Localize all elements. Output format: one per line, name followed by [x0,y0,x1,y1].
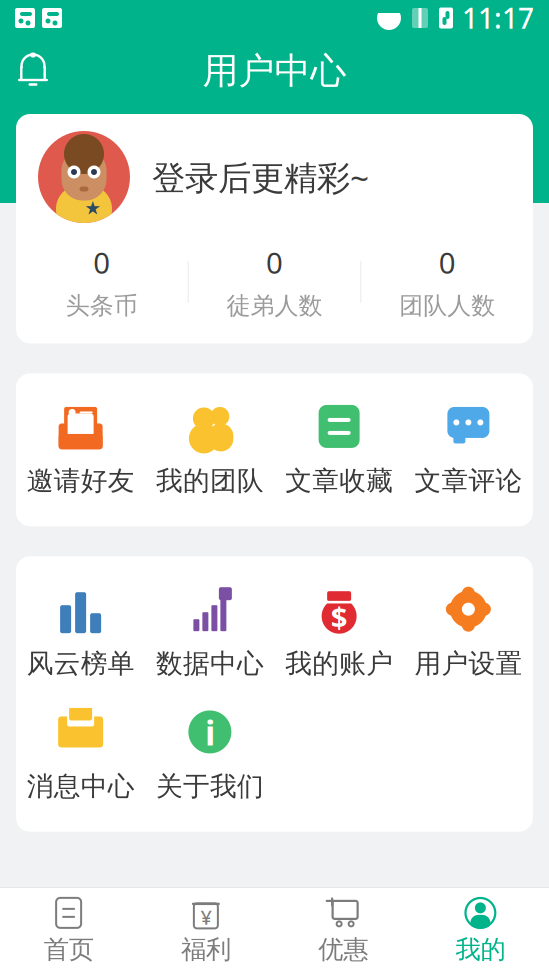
staticText: 文章收藏 [285,464,393,497]
button[interactable]: i [145,708,274,803]
staticText: i [205,709,215,755]
button[interactable]: 0 [361,243,533,320]
staticText: 风云榜单 [27,647,135,680]
button[interactable]: 文章收藏 [274,402,404,497]
staticText: 徒弟人数 [226,291,322,320]
button[interactable]: 我的团队 [145,402,274,497]
staticText: 福利 [181,934,231,965]
button[interactable]: 0 [189,243,360,320]
staticText: 头条币 [66,291,138,320]
staticText: 团队人数 [399,291,495,320]
staticText: 0 [93,243,110,282]
button[interactable]: 0 [16,243,188,320]
staticText: 11:17 [462,0,534,37]
button[interactable]: 数据中心 [145,585,274,680]
button[interactable]: 消息中心 [16,708,145,803]
button[interactable]: 我的 [412,897,549,965]
staticText: 0 [439,243,456,282]
staticText: 优惠 [318,934,368,965]
button[interactable]: 用户设置 [404,585,533,680]
staticText: 文章评论 [414,464,522,497]
staticText: 关于我们 [156,770,264,803]
staticText: 我的团队 [156,464,264,497]
staticText: 登录后更精彩~ [152,155,369,199]
staticText: 消息中心 [27,770,135,803]
button[interactable]: 优惠 [274,897,412,965]
staticText: 数据中心 [156,647,264,680]
staticText: 用户设置 [414,647,522,680]
button[interactable]: 风云榜单 [16,585,145,680]
staticText: 我的 [455,934,505,965]
button[interactable]: 首页 [0,897,137,965]
staticText: 用户中心 [202,49,346,93]
staticText: 首页 [44,934,94,965]
button[interactable]: 文章评论 [404,402,533,497]
staticText: ★ [84,197,101,219]
staticText: 我的账户 [285,647,393,680]
staticText: 邀请好友 [27,464,135,497]
staticText: $ [331,598,348,637]
button[interactable]: 通知 [4,42,62,100]
staticText: 0 [266,243,283,282]
staticText: ¥ [200,904,211,930]
button[interactable]: $ [274,585,404,680]
button[interactable]: 邀请好友 [16,402,145,497]
button[interactable]: ¥ [137,897,274,965]
